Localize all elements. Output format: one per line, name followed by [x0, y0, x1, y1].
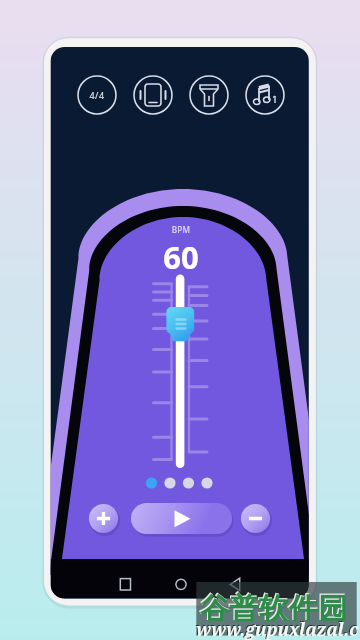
- staticText: BPM: [101, 224, 261, 237]
- button[interactable]: Sound: [246, 76, 284, 114]
- staticText: 谷普软件园: [199, 590, 347, 620]
- button[interactable]: Play: [131, 502, 232, 534]
- staticText: 60: [101, 236, 261, 286]
- button[interactable]: Flashlight: [190, 76, 228, 114]
- button[interactable]: Back: [246, 561, 296, 597]
- button[interactable]: Home: [158, 561, 208, 597]
- staticText: 谷普软件园: [200, 591, 348, 621]
- staticText: www.gupuxlazal.com: [196, 618, 360, 640]
- button[interactable]: Vibration: [134, 76, 172, 114]
- button[interactable]: Tempo slider: [160, 297, 206, 353]
- staticText: www.gupuxlazal.com: [195, 617, 360, 639]
- button[interactable]: Time signature 4/4: [78, 76, 116, 114]
- staticText: 4/4: [17, 89, 177, 103]
- button[interactable]: Increase tempo: [88, 503, 119, 534]
- button[interactable]: Decrease tempo: [240, 503, 271, 534]
